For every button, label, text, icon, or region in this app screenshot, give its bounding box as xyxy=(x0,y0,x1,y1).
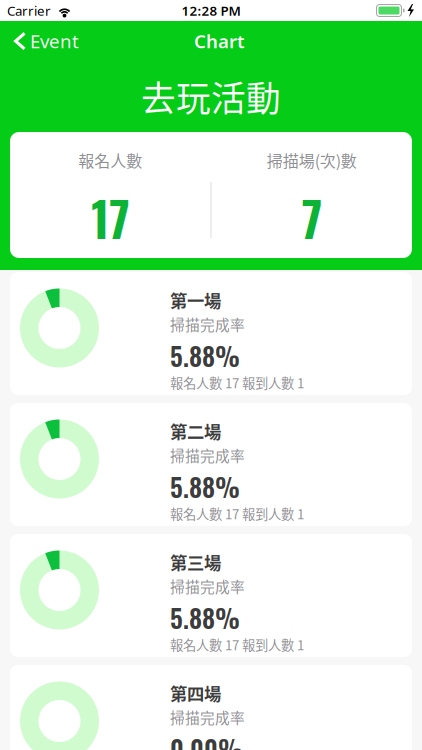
button[interactable]: 第三場 xyxy=(10,534,412,657)
staticText: 報名人數 17 報到人數 1 xyxy=(170,504,304,523)
staticText: Event xyxy=(30,29,79,53)
staticText: 掃描場(次)數 xyxy=(267,148,357,172)
staticText: 5.88% xyxy=(170,599,240,636)
staticText: 掃描完成率 xyxy=(170,444,245,466)
staticText: 報名人數 17 報到人數 1 xyxy=(170,373,304,392)
button[interactable]: 第二場 xyxy=(10,403,412,526)
staticText: 報名人數 17 報到人數 1 xyxy=(170,635,304,654)
staticText: 5.88% xyxy=(170,468,240,505)
staticText: 第三場 xyxy=(170,549,221,575)
staticText: 去玩活動 xyxy=(141,71,281,122)
staticText: 第二場 xyxy=(170,418,221,444)
staticText: Chart xyxy=(194,29,245,53)
staticText: 5.88% xyxy=(170,337,240,374)
button[interactable]: 第一場 xyxy=(10,272,412,395)
staticText: 掃描完成率 xyxy=(170,575,245,597)
staticText: 第一場 xyxy=(170,287,221,313)
staticText: 12:28 PM xyxy=(181,2,240,19)
staticText: 第四場 xyxy=(170,680,221,706)
button[interactable]: Event xyxy=(0,24,87,58)
staticText: 報名人數 xyxy=(78,148,142,172)
staticText: 7 xyxy=(302,183,322,253)
button[interactable]: 第四場 xyxy=(10,665,412,750)
staticText: 17 xyxy=(91,183,129,253)
staticText: 掃描完成率 xyxy=(170,313,245,335)
staticText: Carrier xyxy=(7,2,51,19)
staticText: 掃描完成率 xyxy=(170,706,245,728)
staticText: 0.00% xyxy=(170,730,243,750)
